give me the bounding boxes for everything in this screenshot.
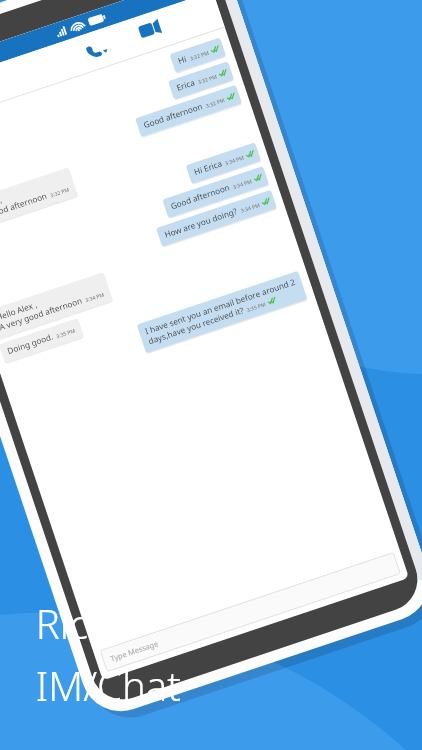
button[interactable]: Rich IM/Chat promo bbox=[0, 0, 422, 750]
